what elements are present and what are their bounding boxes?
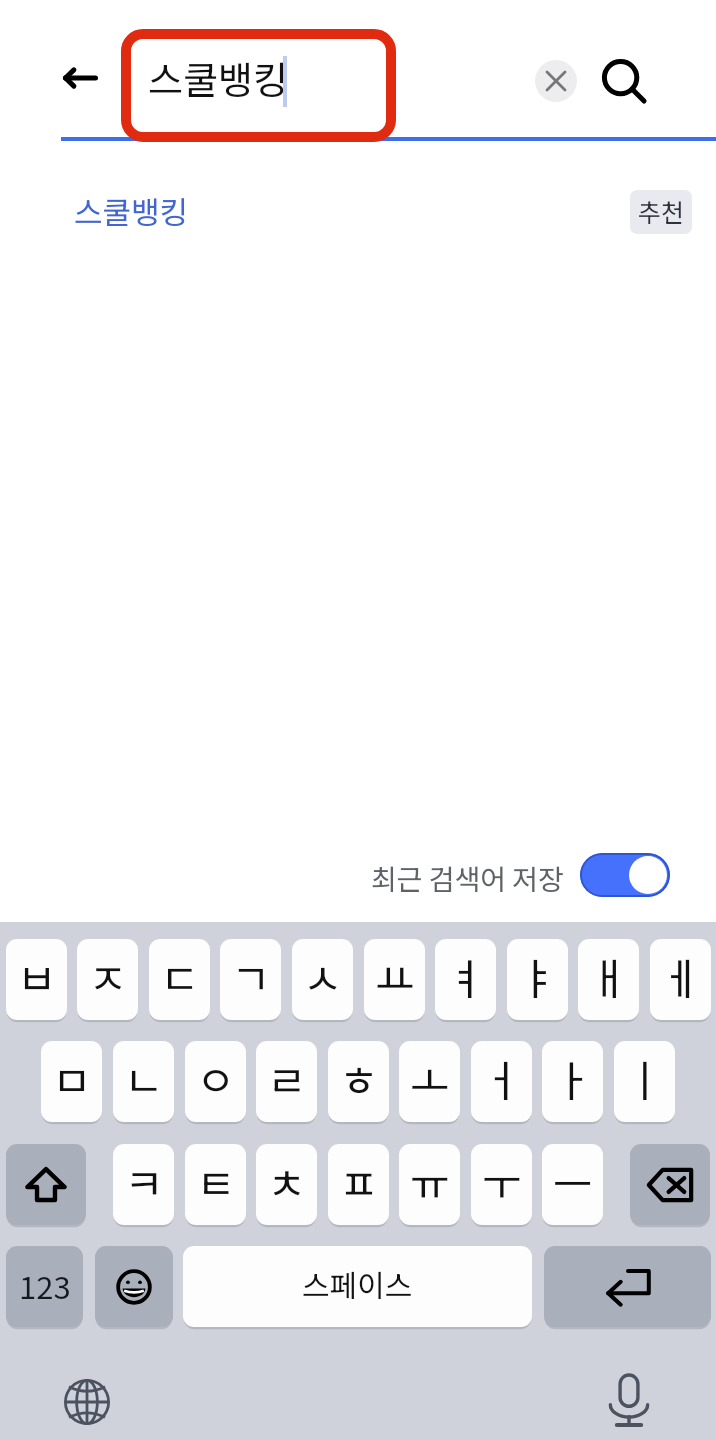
staticText: ㅔ	[661, 945, 701, 1007]
button[interactable]: ㅠ	[399, 1144, 460, 1225]
staticText: 스페이스	[302, 1262, 413, 1305]
staticText: ㅅ	[303, 945, 343, 1007]
staticText: ㅓ	[482, 1047, 522, 1109]
button[interactable]: 스쿨뱅킹	[0, 176, 716, 248]
staticText: 최근 검색어 저장	[371, 858, 564, 899]
button[interactable]: ㅐ	[578, 939, 639, 1020]
button[interactable]: ㅎ	[328, 1041, 389, 1122]
button[interactable]: Clear text	[535, 60, 577, 102]
staticText: 스쿨뱅킹	[148, 50, 288, 105]
staticText: ㅡ	[553, 1150, 593, 1212]
staticText: ㅈ	[88, 945, 128, 1007]
staticText: ㅑ	[518, 945, 558, 1007]
button[interactable]: ㄱ	[220, 939, 281, 1020]
staticText: ㅁ	[52, 1047, 92, 1109]
button[interactable]: ㅛ	[364, 939, 425, 1020]
button[interactable]: ㅌ	[185, 1144, 246, 1225]
staticText: ㅍ	[339, 1150, 379, 1212]
button[interactable]: ㅓ	[471, 1041, 532, 1122]
button[interactable]: Search	[586, 42, 654, 110]
button[interactable]: ㅔ	[650, 939, 711, 1020]
button[interactable]: ㅡ	[542, 1144, 603, 1225]
button[interactable]: ㅑ	[507, 939, 568, 1020]
button[interactable]: 123	[6, 1246, 83, 1327]
button[interactable]: ㅁ	[41, 1041, 102, 1122]
button[interactable]: Backspace	[630, 1144, 710, 1225]
button[interactable]: ㄹ	[256, 1041, 317, 1122]
staticText: ㅎ	[339, 1047, 379, 1109]
staticText: 스쿨뱅킹	[74, 188, 189, 233]
button[interactable]: 추천	[630, 190, 692, 234]
staticText: 123	[19, 1263, 71, 1308]
button[interactable]: Enter	[544, 1246, 711, 1327]
button[interactable]: Shift	[6, 1144, 86, 1225]
button[interactable]: ㅅ	[292, 939, 353, 1020]
button[interactable]: ㅂ	[6, 939, 67, 1020]
button[interactable]: ㅋ	[113, 1144, 174, 1225]
button[interactable]: Back	[48, 46, 112, 110]
button[interactable]: 스페이스	[183, 1246, 532, 1327]
button[interactable]: ㄴ	[113, 1041, 174, 1122]
button[interactable]: ㅊ	[256, 1144, 317, 1225]
staticText: ㅣ	[625, 1047, 665, 1109]
button[interactable]: ㅣ	[614, 1041, 675, 1122]
button[interactable]: Save recent searches	[580, 853, 670, 897]
button[interactable]: ㅕ	[435, 939, 496, 1020]
staticText: ㅐ	[589, 945, 629, 1007]
button[interactable]: ㅏ	[542, 1041, 603, 1122]
staticText: ㅊ	[267, 1150, 307, 1212]
staticText: ㅏ	[553, 1047, 593, 1109]
staticText: ㅌ	[196, 1150, 236, 1212]
staticText: ㄹ	[267, 1047, 307, 1109]
button[interactable]: ㅍ	[328, 1144, 389, 1225]
staticText: ㄱ	[231, 945, 271, 1007]
staticText: ㅜ	[482, 1150, 522, 1212]
button[interactable]: Change language	[55, 1370, 119, 1434]
button[interactable]: ㄷ	[149, 939, 210, 1020]
button[interactable]: Voice input	[597, 1367, 661, 1431]
staticText: ㅇ	[196, 1047, 236, 1109]
staticText: ㅕ	[446, 945, 486, 1007]
staticText: ㄷ	[160, 945, 200, 1007]
staticText: ㅗ	[410, 1047, 450, 1109]
staticText: ㅂ	[17, 945, 57, 1007]
button[interactable]: ㅜ	[471, 1144, 532, 1225]
button[interactable]: ㅇ	[185, 1041, 246, 1122]
staticText: ㄴ	[124, 1047, 164, 1109]
staticText: ㅛ	[375, 945, 415, 1007]
staticText: ㅋ	[124, 1150, 164, 1212]
button[interactable]: ㅈ	[77, 939, 138, 1020]
button[interactable]: ㅗ	[399, 1041, 460, 1122]
button[interactable]: Emoji	[95, 1246, 173, 1327]
button[interactable]: 스쿨뱅킹	[146, 28, 506, 138]
staticText: 추천	[638, 193, 685, 229]
staticText: ㅠ	[410, 1150, 450, 1212]
